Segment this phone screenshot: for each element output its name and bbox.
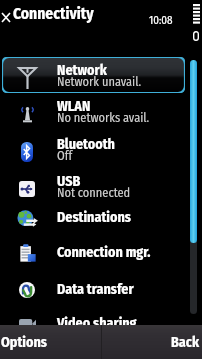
staticText: Options bbox=[1, 334, 47, 351]
staticText: Bluetooth bbox=[57, 136, 115, 153]
staticText: 10:08 bbox=[149, 14, 173, 27]
staticText: Off bbox=[57, 148, 73, 163]
button[interactable]: Bluetooth bbox=[0, 134, 202, 170]
button[interactable]: WLAN bbox=[0, 96, 202, 132]
staticText: Connection mgr. bbox=[57, 244, 151, 261]
button[interactable]: Options bbox=[0, 325, 101, 359]
staticText: USB bbox=[57, 173, 81, 190]
staticText: Data transfer bbox=[57, 281, 134, 298]
button[interactable]: Back bbox=[102, 325, 202, 359]
staticText: Not connected bbox=[57, 185, 131, 200]
staticText: Network bbox=[57, 62, 107, 79]
staticText: No networks avail. bbox=[57, 110, 150, 125]
staticText: Back bbox=[171, 334, 200, 351]
button[interactable]: Close bbox=[0, 8, 12, 26]
staticText: Network unavail. bbox=[57, 74, 142, 89]
staticText: WLAN bbox=[57, 98, 91, 115]
button[interactable]: Network bbox=[0, 60, 202, 96]
button[interactable]: Destinations bbox=[0, 200, 202, 236]
staticText: Video sharing bbox=[57, 315, 137, 332]
button[interactable]: USB bbox=[0, 171, 202, 207]
button[interactable]: Video sharing bbox=[0, 306, 202, 342]
button[interactable]: Connection mgr. bbox=[0, 235, 202, 271]
staticText: Connectivity bbox=[13, 5, 94, 24]
button[interactable]: Data transfer bbox=[0, 272, 202, 308]
staticText: Destinations bbox=[57, 209, 131, 226]
